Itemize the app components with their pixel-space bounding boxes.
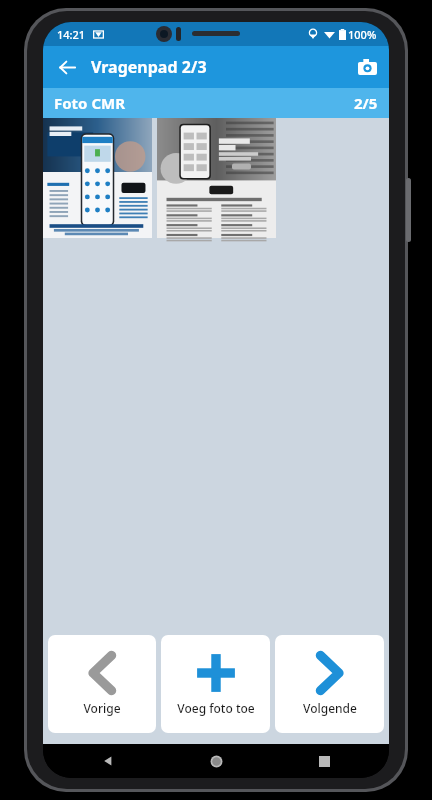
- staticText: 100%: [348, 27, 377, 42]
- staticText: Volgende: [303, 700, 357, 716]
- staticText: Vragenpad 2/3: [91, 56, 207, 78]
- staticText: 2/5: [354, 93, 378, 113]
- button[interactable]: Home: [199, 744, 233, 778]
- staticText: 14:21: [57, 27, 86, 42]
- button[interactable]: Volgende: [275, 635, 384, 733]
- staticText: Foto CMR: [54, 93, 126, 113]
- staticText: Voeg foto toe: [177, 700, 255, 716]
- button[interactable]: Voeg foto toe: [161, 635, 270, 733]
- button[interactable]: Camera: [345, 46, 389, 88]
- button[interactable]: Back: [91, 744, 125, 778]
- staticText: Vorige: [83, 700, 121, 716]
- button[interactable]: Back: [43, 46, 91, 88]
- button[interactable]: Recent apps: [307, 744, 341, 778]
- button[interactable]: Vorige: [48, 635, 156, 733]
- button[interactable]: [43, 118, 152, 238]
- button[interactable]: Foto CMR: [43, 88, 389, 118]
- button[interactable]: [157, 118, 276, 238]
